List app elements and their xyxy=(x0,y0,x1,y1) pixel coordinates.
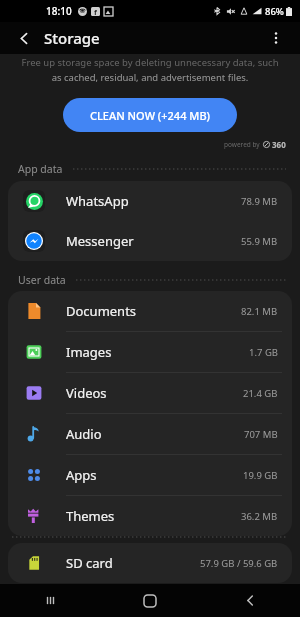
button[interactable]: Documents xyxy=(8,291,292,331)
staticText: WhatsApp xyxy=(66,192,129,210)
button[interactable]: Messenger xyxy=(8,221,292,261)
staticText: Apps xyxy=(66,466,97,484)
staticText: Images xyxy=(66,343,112,361)
staticText: 82.1 MB xyxy=(241,305,278,318)
button[interactable]: CLEAN NOW (+244 MB) xyxy=(63,98,237,132)
button[interactable]: Recents xyxy=(0,584,100,617)
staticText: SD card xyxy=(66,554,113,572)
button[interactable]: SD card xyxy=(8,543,292,583)
staticText: App data xyxy=(18,162,63,176)
staticText: CLEAN NOW (+244 MB) xyxy=(90,108,211,123)
staticText: f xyxy=(94,7,97,16)
staticText: 57.9 GB / 59.6 GB xyxy=(200,557,278,570)
staticText: powered by xyxy=(224,140,260,149)
staticText: Messenger xyxy=(66,232,134,250)
button[interactable]: More options xyxy=(263,25,289,51)
staticText: 21.4 GB xyxy=(243,387,278,400)
staticText: 1.7 GB xyxy=(249,346,278,359)
staticText: Documents xyxy=(66,302,137,320)
button[interactable]: Back xyxy=(200,584,300,617)
staticText: Videos xyxy=(66,384,107,402)
staticText: 55.9 MB xyxy=(241,235,278,248)
button[interactable]: Audio xyxy=(8,414,292,454)
staticText: 360 xyxy=(272,139,286,150)
staticText: 36.2 MB xyxy=(241,510,278,523)
staticText: Free up storage space by deleting unnece… xyxy=(0,56,300,69)
staticText: Audio xyxy=(66,425,102,443)
staticText: as cached, residual, and advertisement f… xyxy=(0,71,300,84)
button[interactable]: Videos xyxy=(8,373,292,413)
button[interactable]: Images xyxy=(8,332,292,372)
button[interactable]: WhatsApp xyxy=(8,181,292,221)
staticText: Storage xyxy=(44,28,100,48)
staticText: 86% xyxy=(265,5,284,18)
button[interactable]: Themes xyxy=(8,496,292,536)
button[interactable]: Home xyxy=(100,584,200,617)
staticText: 18:10 xyxy=(46,4,72,18)
staticText: 19.9 GB xyxy=(243,469,278,482)
staticText: Themes xyxy=(66,507,115,525)
button[interactable]: Back xyxy=(11,25,37,51)
staticText: 707 MB xyxy=(244,428,278,441)
staticText: 78.9 MB xyxy=(241,195,278,208)
staticText: User data xyxy=(18,273,66,287)
button[interactable]: Apps xyxy=(8,455,292,495)
